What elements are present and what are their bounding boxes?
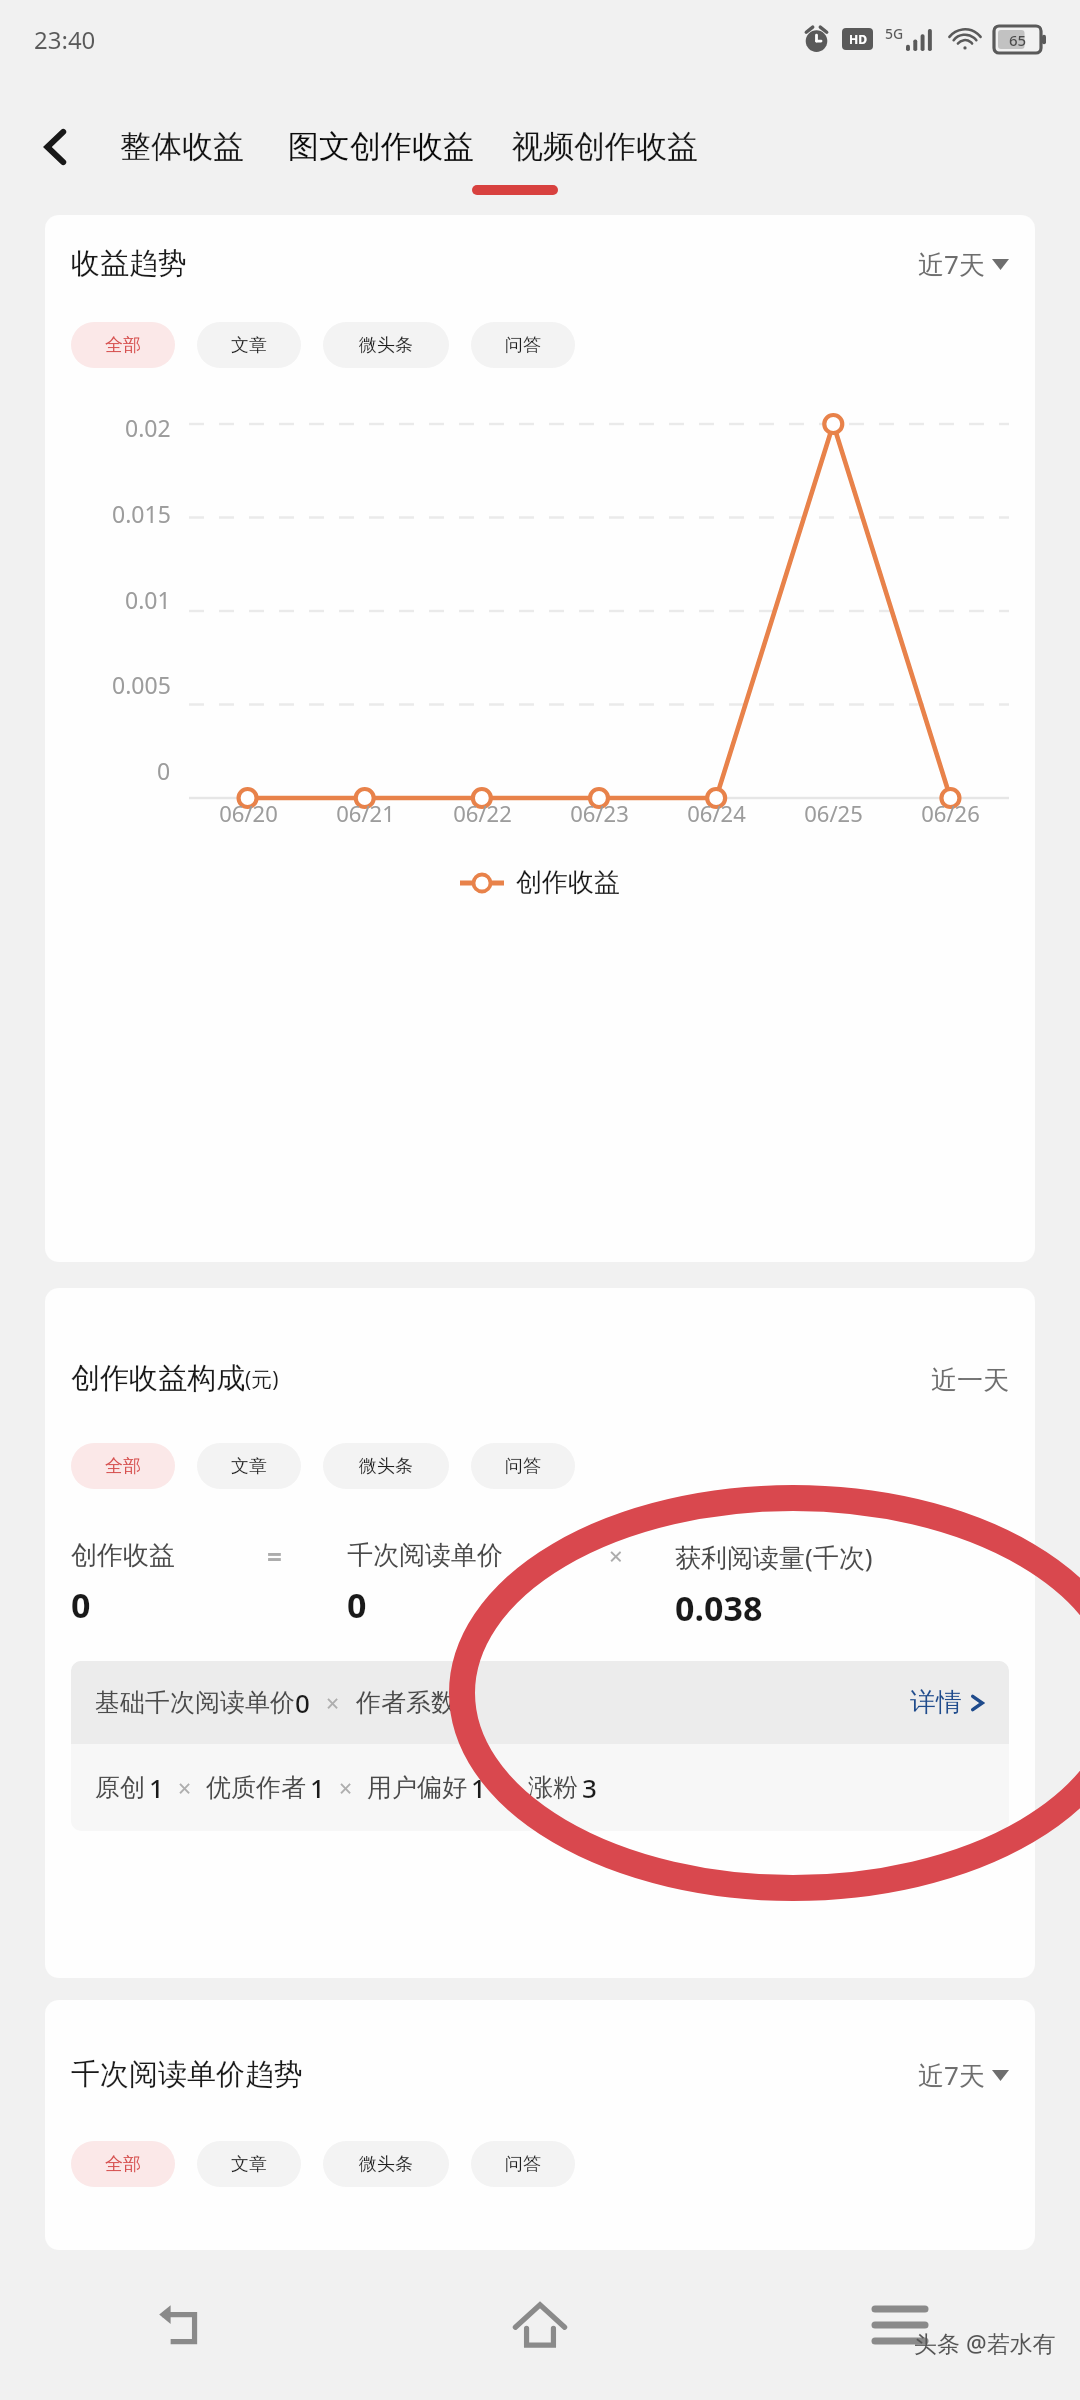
button[interactable]: Back [0, 2250, 360, 2400]
button[interactable]: 问答 [471, 322, 575, 368]
staticText: 近7天 [918, 2057, 985, 2093]
staticText: 0.015 [112, 498, 171, 529]
staticText: 0.02 [125, 412, 171, 443]
staticText: 创作收益 [516, 866, 620, 899]
staticText: 0.005 [112, 669, 171, 700]
staticText: 近一天 [931, 1364, 1009, 1397]
button[interactable]: 问答 [471, 2141, 575, 2187]
staticText: × [609, 1539, 623, 1572]
button[interactable]: 问答 [471, 1443, 575, 1489]
button[interactable]: 全部 [71, 322, 175, 368]
staticText: 0 [71, 1582, 91, 1628]
staticText: 06/22 [453, 798, 512, 828]
button[interactable]: Recent apps [720, 2250, 1080, 2400]
staticText: 全部 [105, 334, 141, 357]
button[interactable]: 文章 [197, 2141, 301, 2187]
button[interactable]: 视频创作收益 [502, 113, 708, 180]
button[interactable]: 文章 [197, 322, 301, 368]
staticText: 06/23 [570, 798, 629, 828]
staticText: 文章 [231, 334, 267, 357]
staticText: 问答 [505, 2153, 541, 2176]
staticText: 1 [149, 1770, 164, 1805]
staticText: 全部 [105, 1455, 141, 1478]
staticText: 头条 @若水有 [914, 2327, 1056, 2358]
staticText: 收益趋势 [71, 245, 187, 282]
button[interactable]: 全部 [71, 2141, 175, 2187]
staticText: = [267, 1539, 282, 1574]
staticText: 问答 [505, 334, 541, 357]
button[interactable]: Back [18, 109, 94, 185]
button[interactable]: 基础千次阅读单价 [71, 1661, 1009, 1744]
staticText: 1 [310, 1770, 325, 1805]
button[interactable]: 整体收益 [104, 113, 260, 180]
staticText: 微头条 [359, 2153, 413, 2176]
staticText: 千次阅读单价 [347, 1539, 503, 1572]
staticText: 3 [582, 1770, 597, 1805]
staticText: 全部 [105, 2153, 141, 2176]
staticText: 图文创作收益 [288, 127, 474, 166]
button[interactable]: 图文创作收益 [278, 113, 484, 180]
staticText: 视频创作收益 [512, 127, 698, 166]
staticText: 06/24 [687, 798, 746, 828]
staticText: 涨粉 [528, 1772, 578, 1803]
button[interactable]: 文章 [197, 1443, 301, 1489]
button[interactable]: 近7天 [918, 2057, 1009, 2093]
staticText: 创作收益构成 [71, 1360, 245, 1397]
staticText: 千次阅读单价趋势 [71, 2056, 303, 2093]
staticText: × [339, 1772, 353, 1803]
staticText: 0.01 [125, 584, 171, 615]
staticText: 微头条 [359, 334, 413, 357]
staticText: 5G [885, 24, 904, 43]
staticText: 优质作者 [206, 1772, 306, 1803]
staticText: 获利阅读量(千次) [675, 1539, 873, 1575]
staticText: 近7天 [918, 246, 985, 282]
staticText: 文章 [231, 1455, 267, 1478]
staticText: 23:40 [34, 23, 96, 56]
staticText: 文章 [231, 2153, 267, 2176]
button[interactable]: 近一天 [931, 1364, 1009, 1397]
button[interactable]: 全部 [71, 1443, 175, 1489]
staticText: 65 [1009, 30, 1027, 50]
button[interactable]: 微头条 [323, 2141, 449, 2187]
staticText: 1 [471, 1770, 486, 1805]
staticText: 0.038 [675, 1585, 763, 1631]
staticText: 问答 [505, 1455, 541, 1478]
staticText: 原创 [95, 1772, 145, 1803]
staticText: 基础千次阅读单价 [95, 1687, 295, 1718]
staticText: 微头条 [359, 1455, 413, 1478]
staticText: 详情 [910, 1686, 962, 1719]
staticText: × [500, 1772, 514, 1803]
staticText: 创作收益 [71, 1539, 175, 1572]
button[interactable]: Home [360, 2250, 720, 2400]
staticText: 06/21 [336, 798, 395, 828]
button[interactable]: 微头条 [323, 322, 449, 368]
staticText: HD [849, 31, 867, 47]
staticText: 用户偏好 [367, 1772, 467, 1803]
staticText: 0 [157, 755, 171, 786]
staticText: 0 [347, 1582, 367, 1628]
staticText: 06/26 [921, 798, 980, 828]
staticText: 整体收益 [120, 127, 244, 166]
staticText: × [178, 1772, 192, 1803]
staticText: 06/20 [219, 798, 278, 828]
staticText: 作者系数 [356, 1687, 456, 1718]
button[interactable]: 微头条 [323, 1443, 449, 1489]
staticText: 0 [295, 1685, 310, 1720]
staticText: (元) [245, 1365, 279, 1394]
staticText: × [326, 1687, 340, 1718]
button[interactable]: 近7天 [918, 246, 1009, 282]
staticText: 3 [461, 1685, 476, 1720]
staticText: 06/25 [804, 798, 863, 828]
